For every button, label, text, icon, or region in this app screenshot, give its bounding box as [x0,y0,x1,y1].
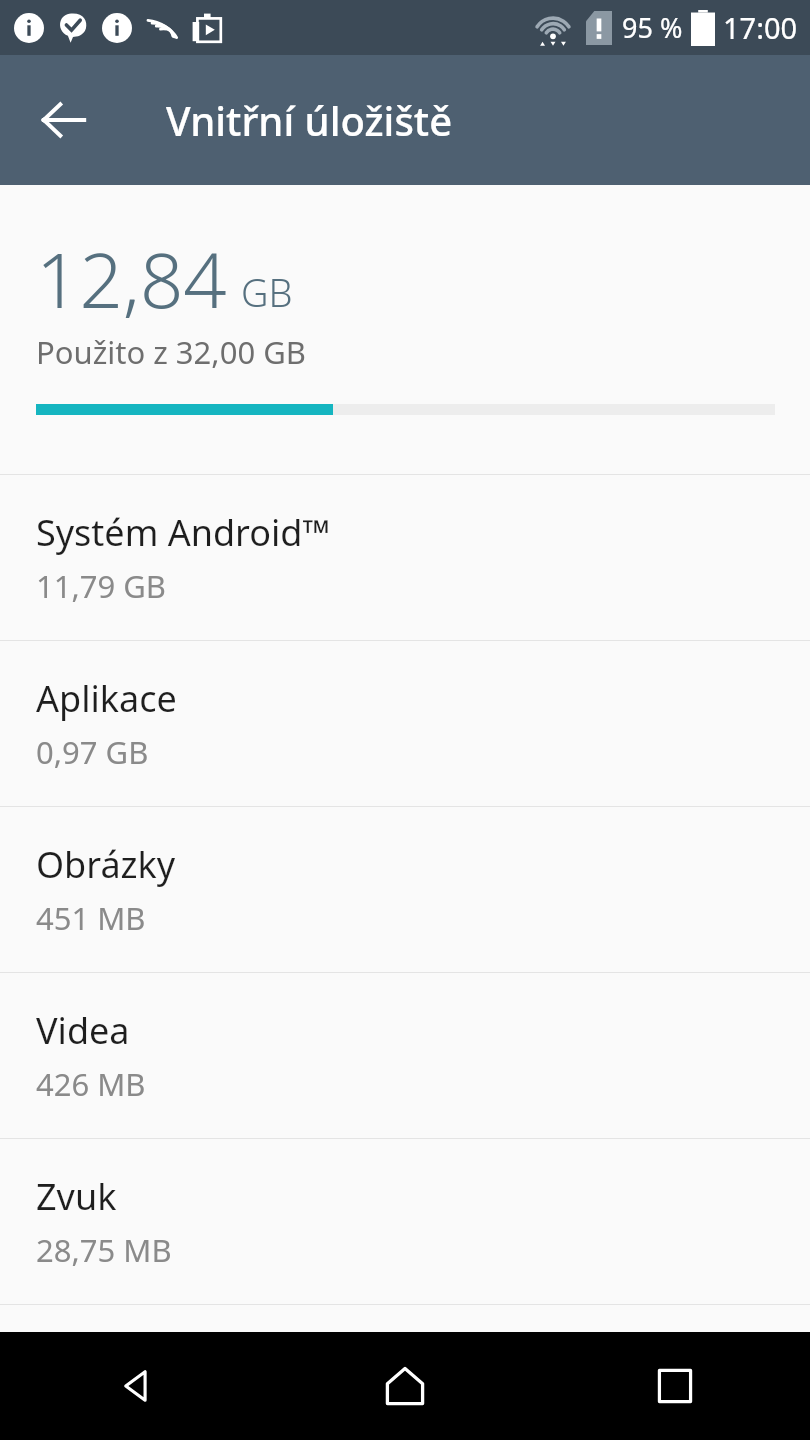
staticText: 28,75 MB [36,1229,172,1271]
button[interactable]: Recent apps [540,1332,810,1440]
staticText: Videa [36,1006,130,1055]
staticText: Zvuk [36,1172,117,1221]
staticText: 451 MB [36,897,146,939]
staticText: Vnitřní úložiště [166,93,453,147]
staticText: 0,97 GB [36,731,149,773]
staticText: Obrázky [36,840,176,889]
staticText: Systém Android™ [36,508,331,557]
staticText: GB [241,266,293,318]
button[interactable]: Home [270,1332,540,1440]
staticText: 17:00 [723,8,798,47]
button[interactable]: Aplikace [0,641,810,806]
button[interactable]: Zvuk [0,1139,810,1304]
staticText: Použito z 32,00 GB [36,331,306,373]
staticText: 11,79 GB [36,565,167,607]
button[interactable]: Obrázky [0,807,810,972]
button[interactable]: Back [22,78,106,162]
button[interactable]: Systém Android™ [0,475,810,640]
button[interactable]: Back [0,1332,270,1440]
button[interactable]: Videa [0,973,810,1138]
staticText: 12,84 [36,227,227,331]
staticText: 95 % [622,9,683,46]
staticText: 426 MB [36,1063,146,1105]
staticText: Aplikace [36,674,177,723]
